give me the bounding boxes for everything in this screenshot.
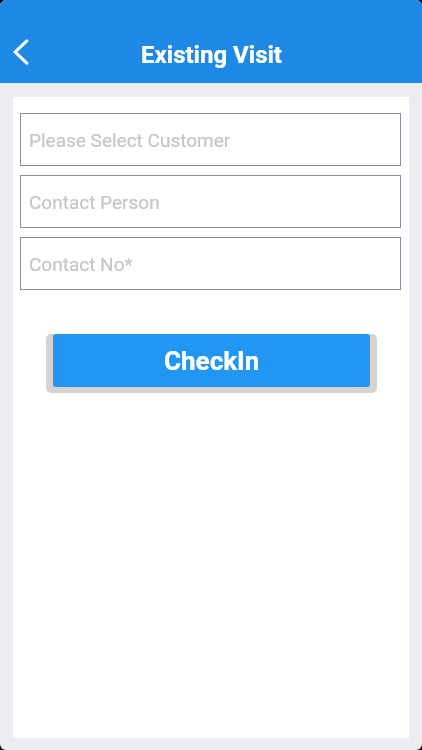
button[interactable]: Please Select Customer (20, 113, 401, 166)
staticText: Contact Person (29, 191, 160, 213)
staticText: Please Select Customer (29, 129, 231, 151)
button[interactable]: Contact Person (20, 175, 401, 228)
staticText: CheckIn (164, 346, 260, 376)
button[interactable]: Contact No* (20, 237, 401, 290)
staticText: Contact No* (29, 253, 133, 275)
button[interactable]: Back (0, 31, 41, 73)
button[interactable]: CheckIn (53, 334, 370, 387)
staticText: Existing Visit (141, 41, 282, 69)
